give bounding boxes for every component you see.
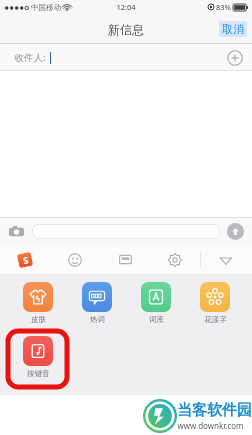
staticText: 词库	[149, 315, 164, 324]
staticText: 中国移动	[31, 3, 61, 12]
staticText: 83%	[216, 2, 231, 12]
staticText: 当客软件园	[177, 401, 252, 420]
button[interactable]	[32, 224, 220, 239]
staticText: S	[22, 253, 29, 266]
staticText: 按键音	[27, 369, 50, 378]
button[interactable]: Settings	[150, 245, 200, 274]
staticText: 12:04	[116, 2, 136, 12]
button[interactable]: 热词	[80, 280, 114, 326]
button[interactable]: 收件人:	[0, 44, 252, 71]
staticText: 取消	[222, 22, 244, 36]
button[interactable]: 取消	[219, 21, 247, 37]
staticText: 热词	[90, 315, 105, 324]
button[interactable]: Sogou input	[0, 245, 50, 274]
button[interactable]: 皮肤	[21, 280, 55, 326]
button[interactable]: Send	[227, 223, 244, 240]
staticText: 皮肤	[31, 315, 46, 324]
staticText: 新信息	[108, 22, 144, 37]
button[interactable]: 按键音	[12, 336, 64, 383]
button[interactable]: Hide keyboard	[215, 249, 237, 271]
button[interactable]: Camera	[8, 223, 25, 240]
button[interactable]: Clipboard	[100, 245, 150, 274]
staticText: 收件人:	[14, 51, 46, 64]
button[interactable]: 词库	[139, 280, 173, 326]
button[interactable]: Emoji	[50, 245, 100, 274]
button[interactable]: Add contact	[227, 50, 243, 66]
staticText: www.downkr.com	[177, 420, 244, 431]
staticText: 花漾字	[204, 315, 227, 324]
button[interactable]: 花漾字	[198, 280, 232, 326]
